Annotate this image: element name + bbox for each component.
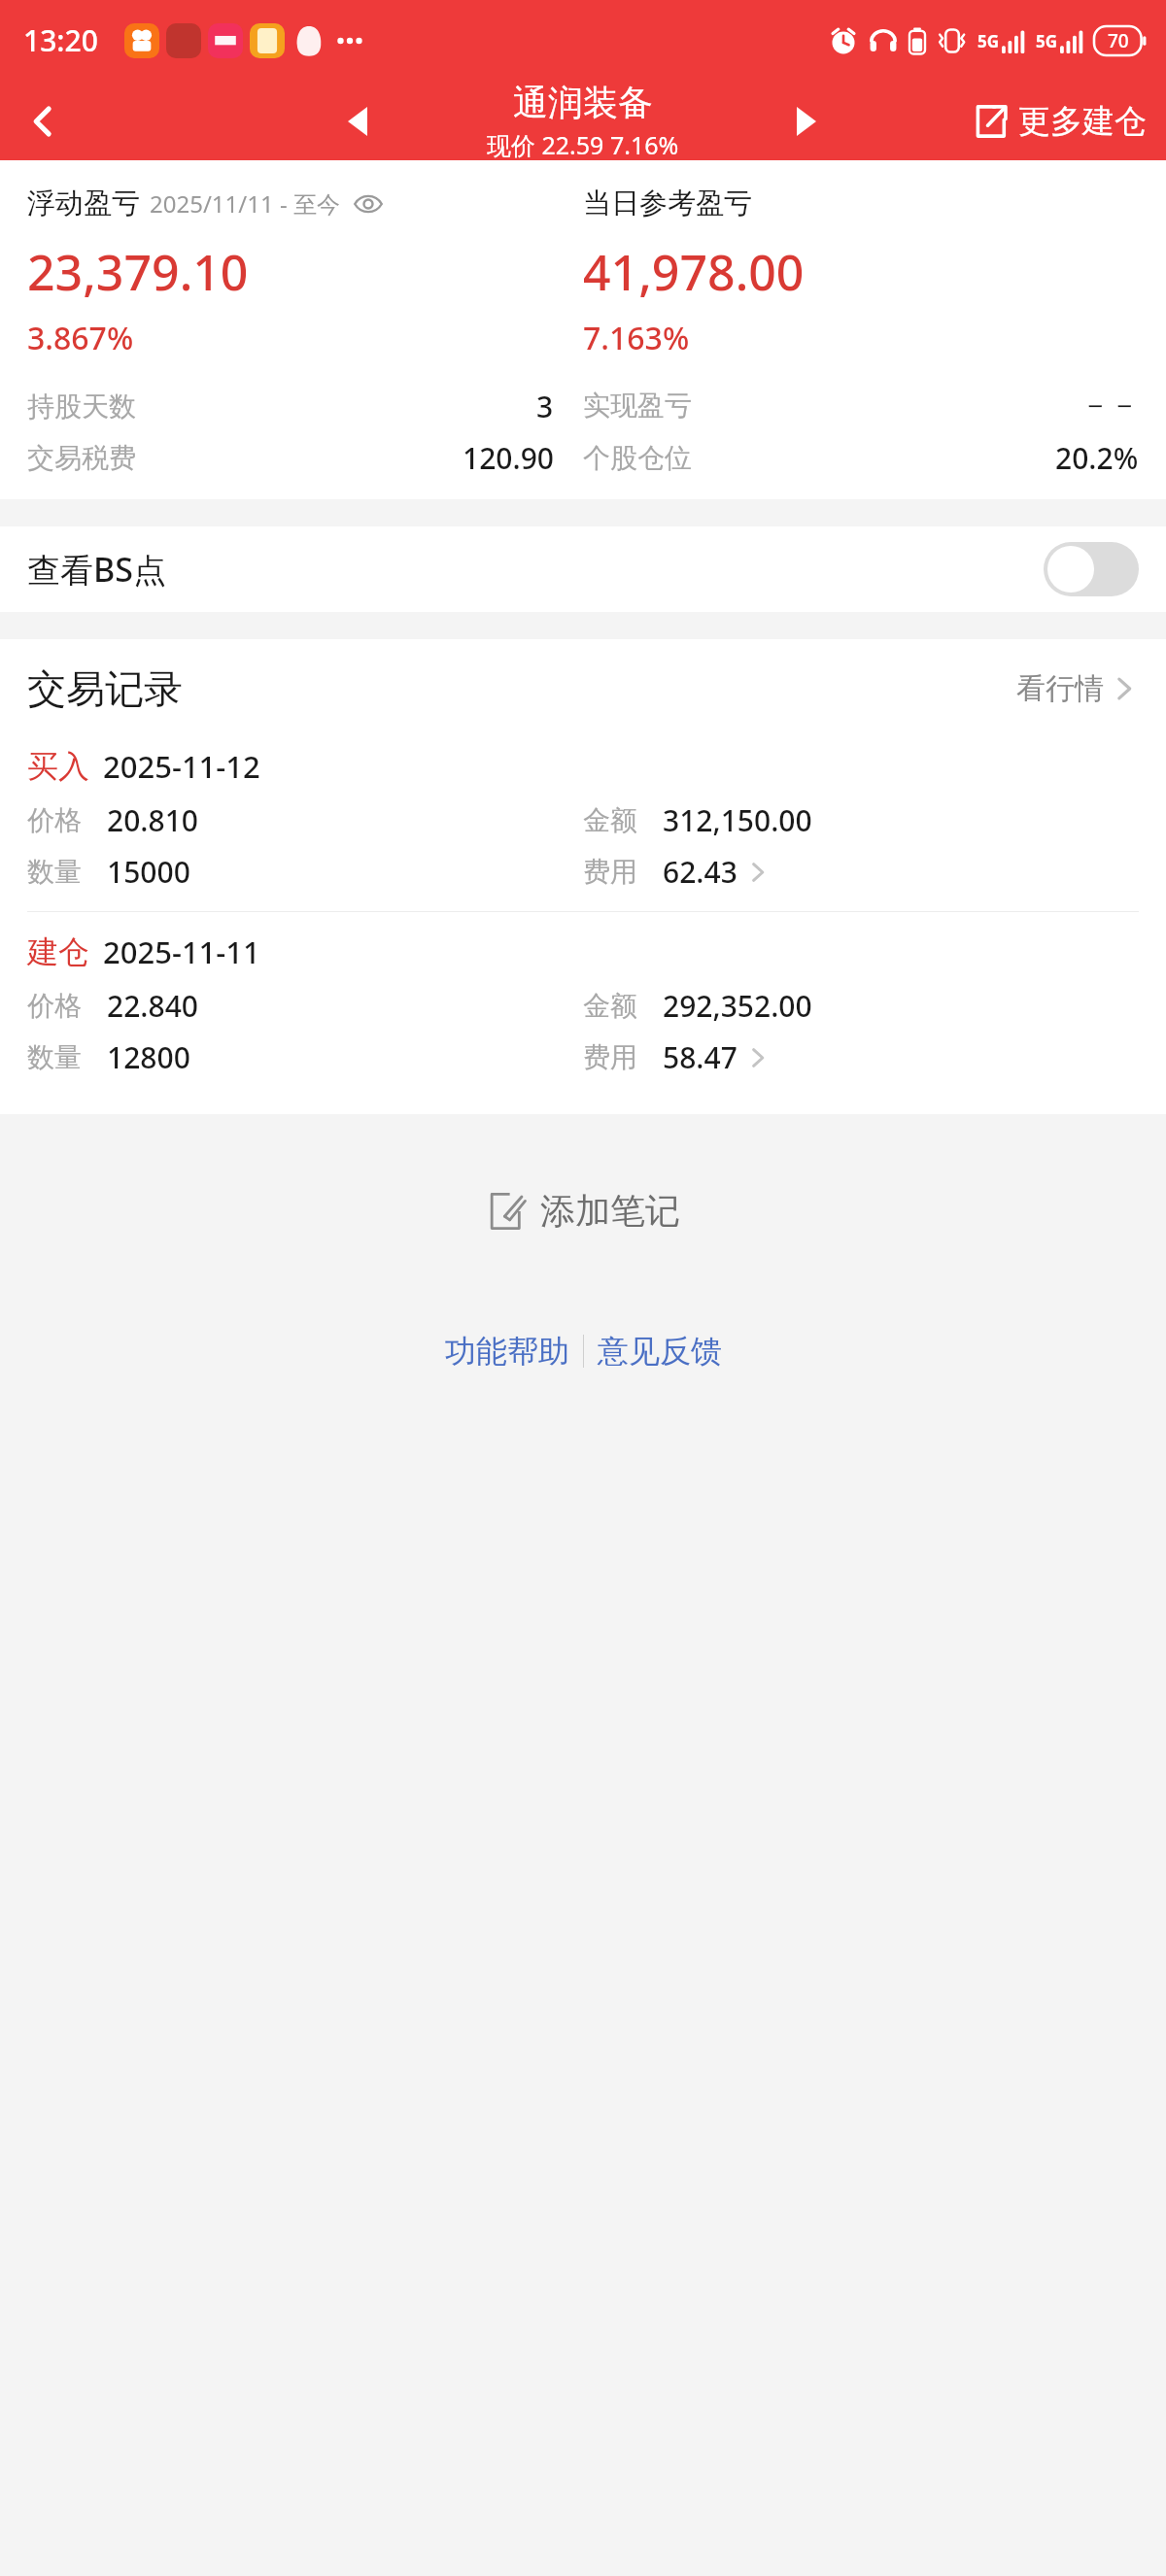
staticText: 买入 bbox=[27, 747, 89, 786]
staticText: 实现盈亏 bbox=[583, 389, 692, 423]
staticText: 数量 bbox=[27, 855, 82, 889]
staticText: 22.840 bbox=[107, 986, 198, 1026]
button[interactable]: Show BS points toggle bbox=[1044, 542, 1139, 596]
staticText: 7.163% bbox=[583, 317, 1139, 359]
staticText: 15000 bbox=[107, 852, 190, 892]
staticText: 更多建仓 bbox=[1018, 101, 1147, 142]
staticText: 312,150.00 bbox=[663, 800, 812, 840]
staticText: 费用 bbox=[583, 855, 637, 889]
staticText: 2025-11-11 bbox=[103, 932, 260, 972]
staticText: 通润装备 bbox=[513, 81, 653, 124]
staticText: 费用 bbox=[583, 1040, 637, 1074]
staticText: －－ bbox=[1080, 387, 1139, 424]
staticText: 添加笔记 bbox=[540, 1189, 680, 1233]
staticText: 金额 bbox=[583, 803, 637, 837]
staticText: 41,978.00 bbox=[583, 239, 1139, 305]
button[interactable]: Next stock bbox=[775, 90, 838, 153]
staticText: 交易税费 bbox=[27, 441, 136, 475]
staticText: 3 bbox=[536, 387, 554, 426]
button[interactable]: 查看BS点 bbox=[0, 526, 1166, 612]
staticText: 价格 bbox=[27, 989, 82, 1023]
button[interactable]: 建仓 bbox=[0, 912, 1166, 1097]
staticText: 23,379.10 bbox=[27, 239, 583, 305]
staticText: 价格 bbox=[27, 803, 82, 837]
button[interactable]: 更多建仓 bbox=[970, 101, 1152, 142]
staticText: 看行情 bbox=[1016, 670, 1104, 707]
staticText: 12800 bbox=[107, 1037, 190, 1077]
staticText: 120.90 bbox=[463, 438, 554, 478]
staticText: 5G bbox=[977, 30, 1000, 52]
staticText: 20.810 bbox=[107, 800, 198, 840]
button[interactable]: Toggle visibility bbox=[352, 187, 385, 220]
staticText: 个股仓位 bbox=[583, 441, 692, 475]
button[interactable]: 买入 bbox=[0, 727, 1166, 911]
button[interactable]: Back bbox=[0, 82, 86, 160]
staticText: 292,352.00 bbox=[663, 986, 812, 1026]
staticText: 交易记录 bbox=[27, 664, 183, 713]
staticText: 现价 22.59 7.16% bbox=[487, 128, 679, 159]
staticText: 数量 bbox=[27, 1040, 82, 1074]
staticText: 金额 bbox=[583, 989, 637, 1023]
staticText: 2025/11/11 - 至今 bbox=[150, 187, 340, 220]
button[interactable]: 意见反馈 bbox=[584, 1324, 736, 1378]
staticText: 浮动盈亏 bbox=[27, 186, 140, 221]
staticText: 持股天数 bbox=[27, 390, 136, 424]
button[interactable]: 功能帮助 bbox=[431, 1324, 583, 1378]
button[interactable]: 看行情 bbox=[1011, 664, 1143, 713]
staticText: 查看BS点 bbox=[27, 547, 166, 592]
staticText: 70 bbox=[1108, 28, 1129, 53]
staticText: 建仓 bbox=[27, 932, 89, 971]
staticText: 20.2% bbox=[1055, 438, 1139, 478]
staticText: 13:20 bbox=[23, 20, 98, 60]
staticText: 意见反馈 bbox=[598, 1332, 722, 1371]
staticText: 62.43 bbox=[663, 852, 737, 892]
button[interactable]: 添加笔记 bbox=[466, 1181, 700, 1240]
staticText: 当日参考盈亏 bbox=[583, 186, 752, 221]
staticText: 58.47 bbox=[663, 1037, 737, 1077]
staticText: 3.867% bbox=[27, 317, 583, 359]
staticText: 功能帮助 bbox=[445, 1332, 569, 1371]
staticText: 5G bbox=[1036, 30, 1058, 52]
button[interactable]: Previous stock bbox=[326, 90, 389, 153]
staticText: 2025-11-12 bbox=[103, 746, 260, 787]
